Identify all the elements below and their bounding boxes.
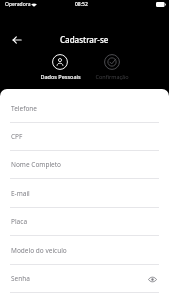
staticText: Cadastrar-se <box>60 34 109 45</box>
staticText: Modelo do veículo <box>11 246 67 255</box>
button[interactable]: Dados Pessoais <box>39 54 81 80</box>
button[interactable]: CPF <box>0 123 169 151</box>
button[interactable]: Telefone <box>0 95 169 123</box>
staticText: Placa <box>11 217 28 226</box>
staticText: 08:52 <box>75 1 88 8</box>
button[interactable]: Senha <box>0 265 169 293</box>
staticText: Nome Completo <box>11 160 62 169</box>
button[interactable]: Back <box>8 31 26 49</box>
button[interactable]: Placa <box>0 208 169 236</box>
button[interactable]: Modelo do veículo <box>0 236 169 265</box>
button[interactable]: Show password <box>146 273 158 285</box>
staticText: Confirmação <box>95 73 129 80</box>
staticText: Operadora <box>5 1 31 8</box>
staticText: Senha <box>11 274 30 283</box>
staticText: Telefone <box>11 104 38 113</box>
staticText: Dados Pessoais <box>40 73 81 80</box>
button[interactable]: E-mail <box>0 179 169 208</box>
button[interactable]: Nome Completo <box>0 151 169 179</box>
button[interactable]: Confirmação <box>91 54 133 80</box>
staticText: E-mail <box>11 189 30 198</box>
staticText: CPF <box>11 132 23 141</box>
